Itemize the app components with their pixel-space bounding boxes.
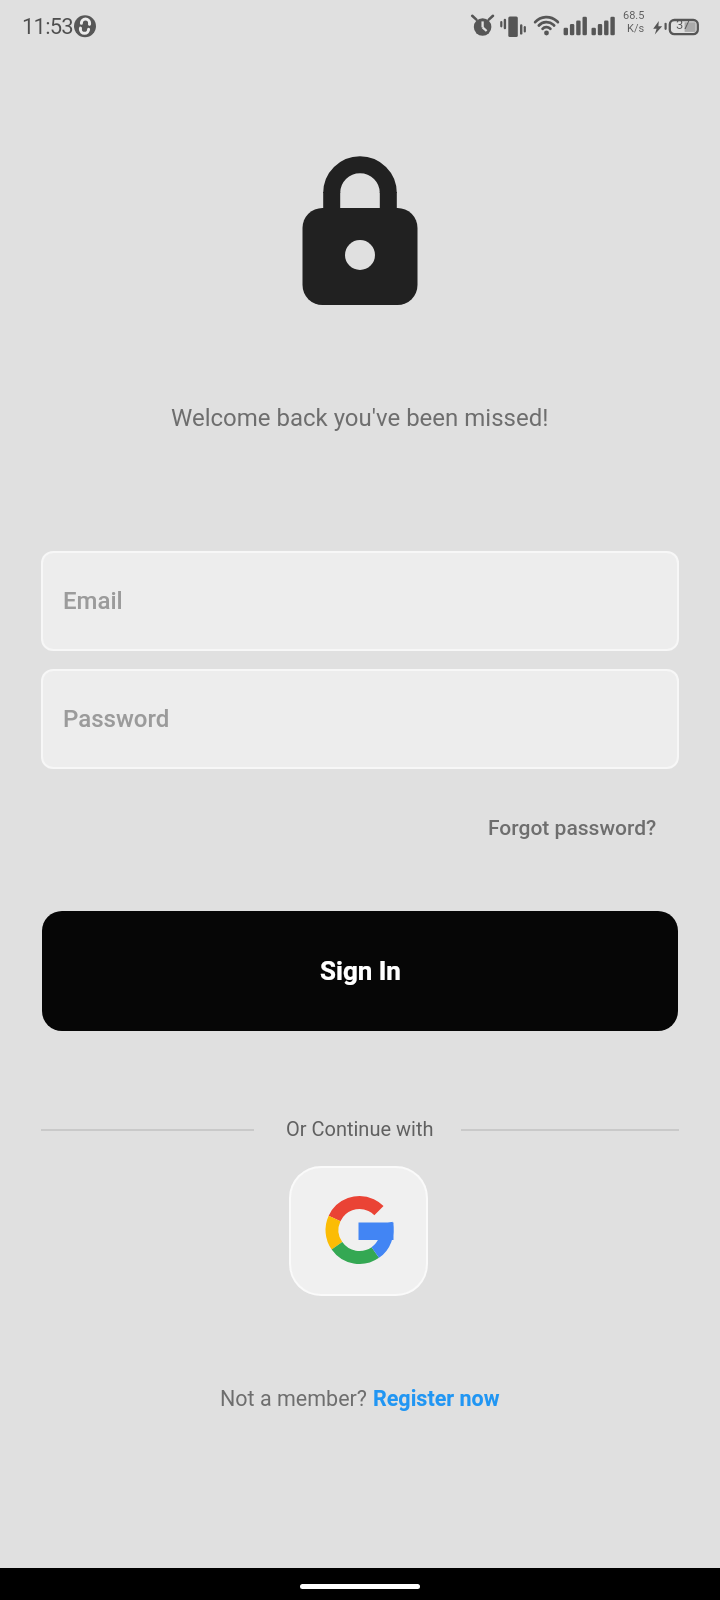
staticText: 68.5 [623,9,645,22]
button[interactable]: Sign In [42,911,678,1031]
button[interactable]: Forgot password? [488,816,657,841]
button[interactable]: Email [41,551,679,651]
staticText: 37 [676,17,690,32]
staticText: Welcome back you've been missed! [171,404,549,432]
staticText: Email [63,587,123,615]
button[interactable] [289,1166,428,1296]
staticText: Or Continue with [286,1117,434,1140]
staticText: Register now [373,1386,500,1411]
staticText: 11:53 [22,14,73,40]
staticText: Sign In [320,956,401,986]
staticText: Forgot password? [488,816,657,841]
staticText: Password [63,705,170,733]
staticText: Not a member? [220,1386,373,1411]
button[interactable]: Register now [373,1386,500,1411]
button[interactable]: Password [41,669,679,769]
staticText: K/s [627,22,645,35]
